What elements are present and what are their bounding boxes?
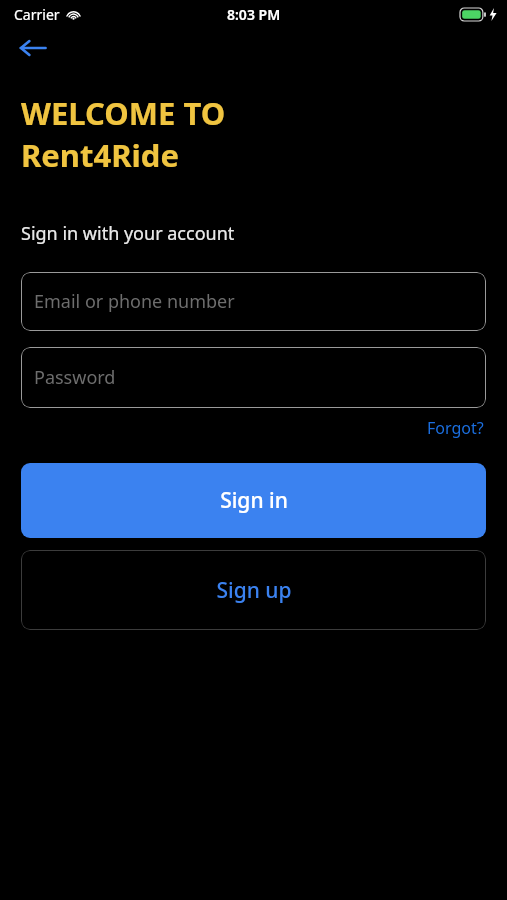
staticText: Carrier (14, 5, 60, 24)
button[interactable]: Back (13, 28, 53, 68)
staticText: Email or phone number (34, 289, 235, 314)
button[interactable]: Password (21, 347, 486, 408)
staticText: Sign up (216, 576, 292, 605)
staticText: Rent4Ride (21, 134, 179, 176)
staticText: 8:03 PM (227, 5, 281, 24)
button[interactable]: Email or phone number (21, 272, 486, 331)
staticText: WELCOME TO (21, 92, 226, 134)
button[interactable]: Sign up (21, 550, 486, 630)
staticText: Sign in with your account (21, 221, 235, 246)
staticText: Password (34, 365, 116, 390)
button[interactable]: Forgot? (425, 415, 486, 441)
button[interactable]: Sign in (21, 463, 486, 538)
staticText: Forgot? (427, 417, 484, 439)
staticText: Sign in (220, 486, 288, 515)
